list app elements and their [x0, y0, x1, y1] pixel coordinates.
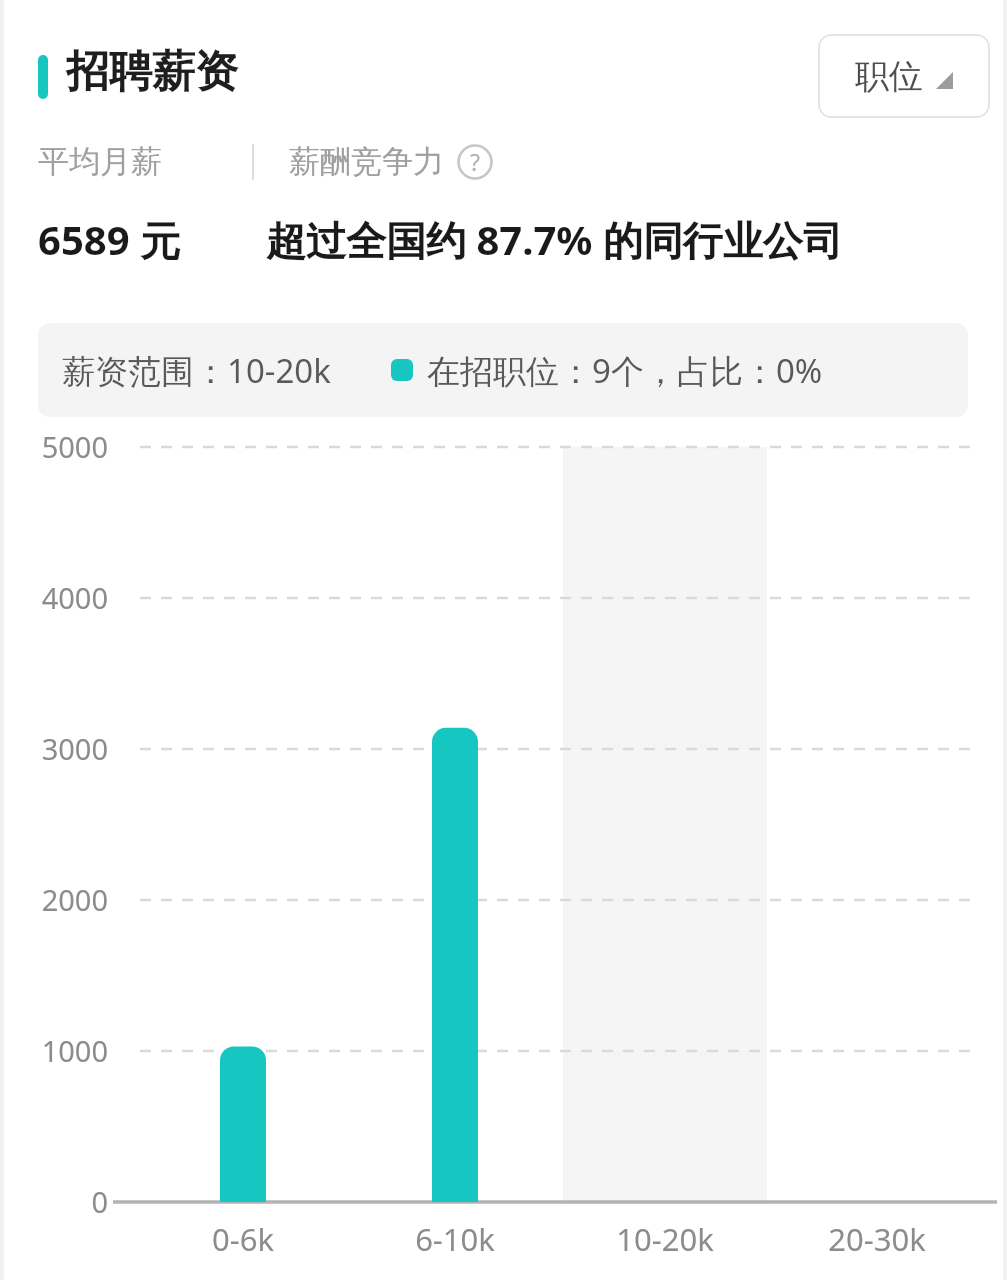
staticText: 在招职位：9个，占比：0%: [427, 348, 823, 393]
staticText: 3000: [0, 729, 108, 768]
staticText: 超过全国约 87.7% 的同行业公司: [266, 212, 843, 267]
staticText: 职位: [855, 55, 923, 98]
staticText: 6-10k: [355, 1218, 555, 1260]
staticText: 薪资范围：10-20k: [62, 348, 331, 393]
button[interactable]: 薪酬竞争力说明: [457, 144, 493, 180]
button[interactable]: 职位: [818, 34, 990, 118]
staticText: 0: [0, 1182, 108, 1221]
staticText: 10-20k: [565, 1218, 765, 1260]
staticText: 招聘薪资: [66, 45, 238, 99]
staticText: 5000: [0, 427, 108, 466]
staticText: 0-6k: [143, 1218, 343, 1260]
button[interactable]: 薪资范围：10-20k: [38, 323, 968, 417]
staticText: 6589 元: [38, 212, 180, 267]
staticText: 平均月薪: [38, 142, 162, 181]
staticText: ?: [470, 146, 480, 177]
staticText: 20-30k: [777, 1218, 977, 1260]
staticText: 2000: [0, 880, 108, 919]
staticText: 4000: [0, 578, 108, 617]
staticText: 1000: [0, 1031, 108, 1070]
staticText: 薪酬竞争力: [289, 142, 444, 181]
